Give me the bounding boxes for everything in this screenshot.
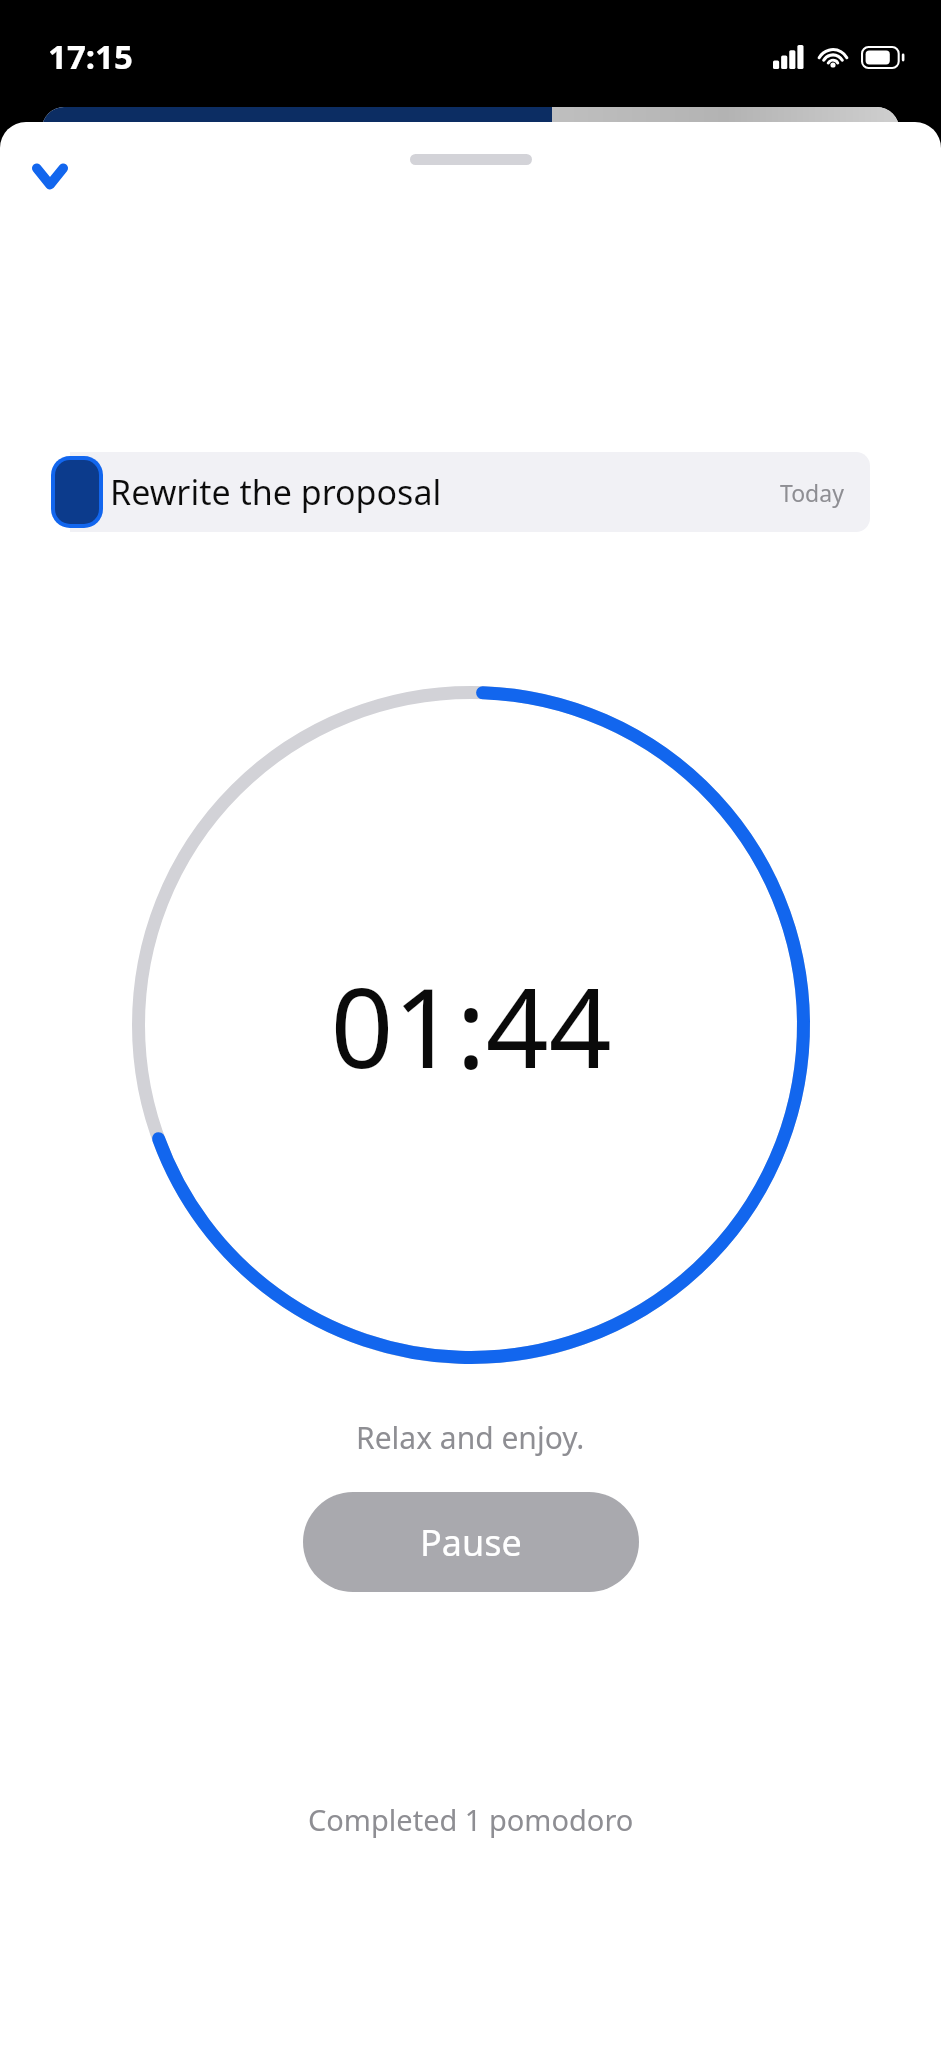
staticText: 01:44 [330, 950, 612, 1100]
staticText: Completed 1 pomodoro [308, 1800, 634, 1839]
staticText: 17:15 [48, 34, 133, 79]
button[interactable]: Collapse [12, 138, 88, 214]
button[interactable]: Rewrite the proposal [0, 452, 941, 532]
staticText: Relax and enjoy. [356, 1417, 585, 1458]
staticText: Rewrite the proposal [110, 469, 442, 515]
staticText: Pause [420, 1518, 522, 1567]
button[interactable]: Pause [303, 1492, 639, 1592]
staticText: Today [780, 477, 844, 508]
